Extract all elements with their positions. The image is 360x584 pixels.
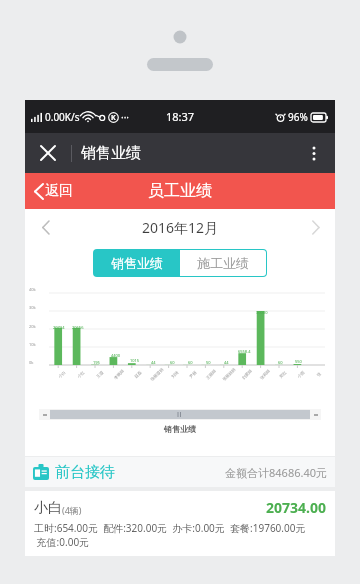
staticText: 金额合计84686.40元 bbox=[225, 465, 327, 480]
button[interactable]: 施工业绩 bbox=[180, 250, 266, 276]
staticText: 王霞 bbox=[95, 370, 104, 379]
staticText: 20656 bbox=[72, 325, 84, 330]
staticText: 30000 bbox=[256, 310, 268, 315]
staticText: 小白 bbox=[57, 370, 66, 379]
staticText: 1015 bbox=[130, 358, 140, 363]
staticText: 20734.00 bbox=[266, 498, 326, 517]
button[interactable]: More options bbox=[299, 138, 329, 168]
staticText: 李晓娟 bbox=[113, 368, 125, 380]
staticText: 张 bbox=[316, 371, 322, 377]
staticText: 充值:0.00元 bbox=[34, 535, 90, 549]
button[interactable]: 小白 bbox=[25, 491, 335, 556]
staticText: 30k bbox=[29, 305, 36, 310]
staticText: 返回 bbox=[45, 182, 73, 200]
staticText: 前台接待 bbox=[55, 463, 115, 482]
staticText: 员工业绩 bbox=[148, 181, 212, 201]
staticText: 6558.4 bbox=[238, 349, 251, 354]
button[interactable]: 前台接待 bbox=[33, 457, 327, 487]
staticText: 20k bbox=[29, 324, 36, 329]
staticText: 尹丽 bbox=[188, 370, 197, 379]
staticText: 40k bbox=[29, 287, 36, 292]
staticText: 张莉娟 bbox=[259, 368, 271, 380]
staticText: K bbox=[111, 113, 116, 123]
staticText: 4400 bbox=[111, 353, 121, 358]
staticText: 销售业绩 bbox=[111, 255, 163, 271]
staticText: 0k bbox=[29, 360, 34, 365]
staticText: 20734 bbox=[53, 325, 65, 330]
staticText: 王丽娟 bbox=[205, 368, 217, 380]
staticText: 销售业绩 bbox=[25, 424, 335, 434]
staticText: 工时:654.00元 配件:320.00元 办卡:0.00元 套餐:19760.… bbox=[34, 521, 306, 535]
staticText: 张丽娟娟 bbox=[221, 367, 236, 382]
staticText: 10k bbox=[29, 342, 36, 347]
staticText: 44 bbox=[224, 360, 229, 365]
button[interactable]: Scroll right bbox=[310, 409, 321, 420]
staticText: 44 bbox=[151, 360, 156, 365]
staticText: ··· bbox=[121, 110, 130, 124]
button[interactable]: 销售业绩 bbox=[94, 250, 180, 276]
button[interactable]: Close bbox=[33, 138, 63, 168]
staticText: 0.00K/s bbox=[45, 110, 80, 124]
staticText: 销售业绩 bbox=[81, 144, 141, 163]
staticText: 50 bbox=[206, 360, 211, 365]
staticText: 施工业绩 bbox=[197, 255, 249, 271]
staticText: 550 bbox=[295, 359, 302, 364]
staticText: 2016年12月 bbox=[142, 218, 219, 237]
staticText: 60 bbox=[188, 360, 193, 365]
staticText: 60 bbox=[170, 360, 175, 365]
staticText: 小白 bbox=[34, 499, 62, 517]
staticText: 赵磊 bbox=[133, 370, 142, 379]
button[interactable]: Next month bbox=[301, 213, 329, 241]
staticText: 小雨 bbox=[296, 370, 305, 379]
button[interactable]: Scroll left bbox=[39, 409, 50, 420]
button[interactable]: Previous month bbox=[31, 213, 59, 241]
staticText: 刘琦 bbox=[170, 370, 179, 379]
staticText: 小红 bbox=[76, 370, 85, 379]
staticText: 195 bbox=[93, 360, 100, 365]
staticText: 徐丽霞娟 bbox=[149, 367, 164, 382]
button[interactable]: 返回 bbox=[32, 178, 75, 204]
button[interactable] bbox=[50, 410, 310, 419]
staticText: (4辆) bbox=[62, 504, 82, 516]
staticText: 刘爱娟 bbox=[241, 368, 253, 380]
staticText: 96% bbox=[288, 110, 308, 124]
staticText: 18:37 bbox=[166, 109, 195, 124]
staticText: 郑红 bbox=[278, 370, 287, 379]
staticText: 60 bbox=[278, 360, 283, 365]
